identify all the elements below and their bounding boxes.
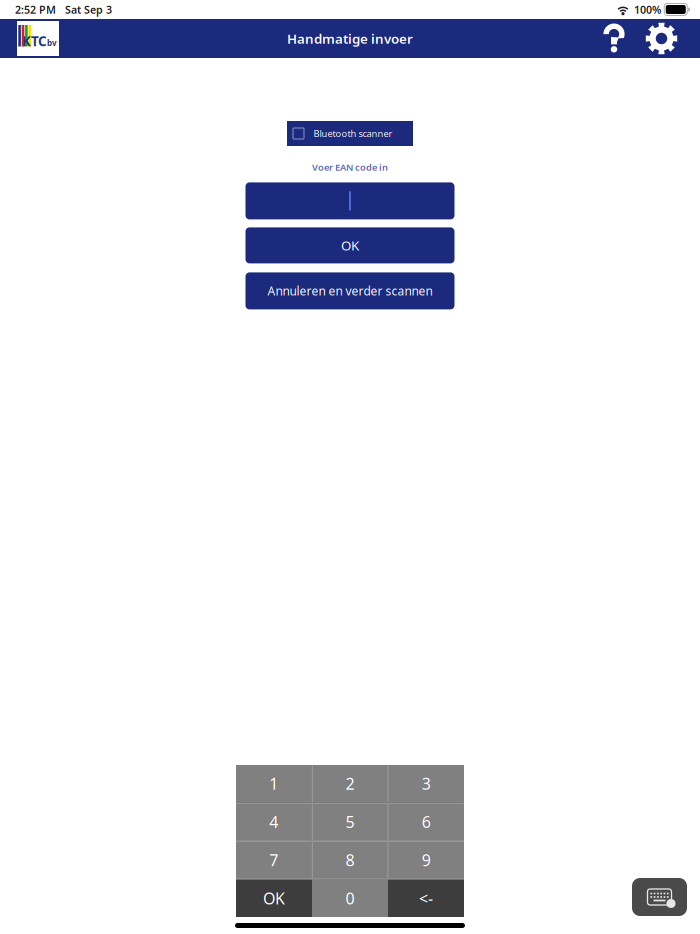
staticText: 1: [269, 773, 278, 794]
staticText: 0: [345, 888, 354, 909]
button[interactable]: 2: [312, 765, 388, 802]
button[interactable]: 3: [389, 765, 464, 802]
button[interactable]: 5: [312, 803, 388, 840]
staticText: Bluetooth scanner: [313, 127, 392, 140]
staticText: Sat Sep 3: [56, 2, 112, 17]
button[interactable]: Annuleren en verder scannen: [245, 272, 454, 309]
staticText: bv: [47, 38, 57, 48]
button[interactable]: Help: [603, 24, 625, 52]
staticText: OK: [341, 236, 359, 254]
button[interactable]: 0: [312, 880, 388, 917]
button[interactable]: OK: [236, 880, 312, 917]
staticText: 2: [345, 773, 354, 794]
staticText: 5: [345, 811, 354, 832]
button[interactable]: Hide keyboard: [632, 878, 687, 916]
button[interactable]: 7: [236, 841, 311, 879]
staticText: Voer EAN code in: [312, 161, 388, 173]
staticText: 2:52 PM: [15, 2, 56, 17]
button[interactable]: Bluetooth scanner: [287, 121, 413, 146]
staticText: 8: [345, 849, 354, 871]
button[interactable]: OK: [245, 227, 454, 263]
staticText: 4: [269, 811, 278, 832]
staticText: 3: [422, 773, 431, 794]
staticText: Annuleren en verder scannen: [267, 283, 432, 299]
staticText: 100%: [631, 2, 664, 17]
button[interactable]: Settings: [645, 21, 678, 55]
staticText: KTC: [22, 32, 47, 50]
staticText: 9: [422, 849, 431, 871]
staticText: 6: [422, 811, 431, 832]
staticText: <-: [419, 888, 433, 909]
button[interactable]: <-: [388, 880, 464, 917]
staticText: OK: [263, 888, 285, 909]
button[interactable]: 8: [312, 841, 388, 879]
staticText: 7: [269, 849, 278, 871]
button[interactable]: 6: [389, 803, 464, 840]
staticText: Handmatige invoer: [287, 30, 413, 47]
button[interactable]: 9: [389, 841, 464, 879]
button[interactable]: 4: [236, 803, 311, 840]
button[interactable]: 1: [236, 765, 311, 802]
